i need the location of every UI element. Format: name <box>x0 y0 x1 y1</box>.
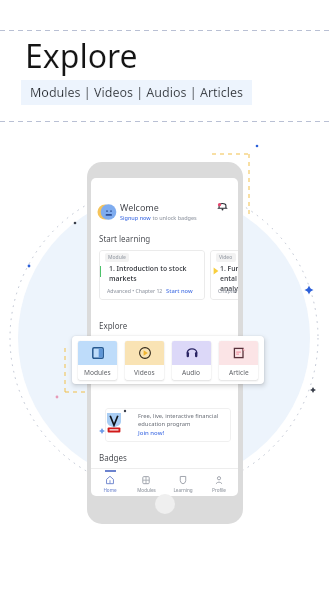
button[interactable]: Module <box>99 250 205 300</box>
button[interactable]: Start now <box>166 287 193 295</box>
staticText: Explore <box>25 34 138 78</box>
button[interactable]: Article <box>219 341 258 380</box>
button[interactable]: Learning <box>166 469 200 493</box>
staticText: Module <box>108 254 126 261</box>
staticText: 1. Fundamental analysis <box>220 264 238 293</box>
staticText: Advanced • Chapter 12 <box>107 287 163 294</box>
staticText: Join now! <box>138 429 165 437</box>
staticText: Signup now <box>120 214 151 221</box>
staticText: Welcome <box>120 201 159 213</box>
staticText: Audio <box>182 368 201 377</box>
staticText: Home <box>103 487 117 493</box>
button[interactable]: Profile <box>202 469 236 493</box>
button[interactable]: Audio <box>172 341 211 380</box>
button[interactable]: Welcome <box>120 201 197 221</box>
staticText: Profile <box>212 487 226 493</box>
staticText: Modules | Videos | Audios | Articles <box>30 84 244 101</box>
staticText: Badges <box>99 452 127 463</box>
staticText: Learning <box>173 487 193 493</box>
button[interactable]: Modules <box>129 469 163 493</box>
staticText: to unlock badges <box>151 214 197 221</box>
staticText: 1. Introduction to stock markets <box>109 264 193 283</box>
staticText: Free, live, interactive financial educat… <box>138 412 219 428</box>
staticText: Video <box>219 254 233 261</box>
button[interactable]: Modules <box>78 341 117 380</box>
button[interactable]: Free, live, interactive financial educat… <box>105 408 231 442</box>
staticText: Chapter 4 <box>218 287 238 294</box>
button[interactable]: Videos <box>125 341 164 380</box>
button[interactable]: Video <box>210 250 238 300</box>
button[interactable]: Notifications <box>216 200 229 213</box>
staticText: Videos <box>134 368 155 377</box>
staticText: Modules <box>137 487 156 493</box>
staticText: Start learning <box>99 233 151 244</box>
staticText: Explore <box>99 320 128 331</box>
staticText: Modules <box>84 368 111 377</box>
staticText: Article <box>229 368 249 377</box>
button[interactable]: Home <box>93 469 127 493</box>
